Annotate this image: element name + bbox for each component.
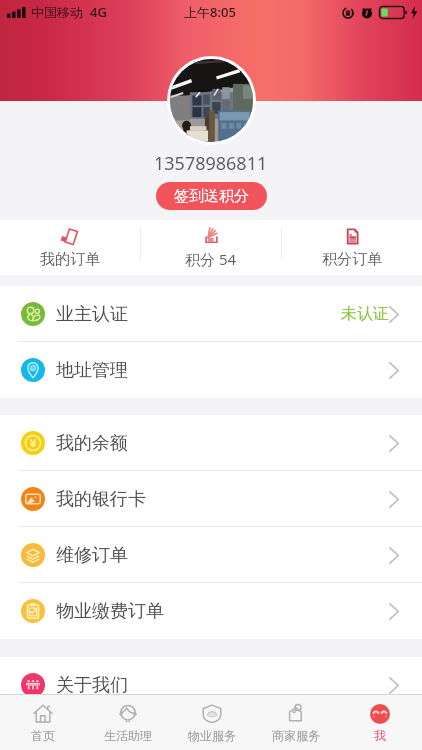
staticText: 我的银行卡 [56,488,146,511]
button[interactable]: 首页 [0,695,85,750]
staticText: 业主认证 [56,303,128,326]
button[interactable]: 物业服务 [170,695,254,750]
staticText: 关于我们 [56,674,128,697]
button[interactable]: 签到送积分 [156,182,267,210]
button[interactable]: 积分 54 [141,220,281,275]
staticText: 维修订单 [56,544,128,567]
staticText: 上午8:05 [184,3,236,21]
staticText: 13578986811 [154,151,268,176]
staticText: 积分 54 [185,249,237,269]
button[interactable]: 我的余额 [0,415,422,471]
staticText: 我 [374,728,386,743]
button[interactable]: 业主认证 [0,286,422,342]
button[interactable]: 地址管理 [0,342,422,398]
button[interactable]: 积分订单 [282,220,422,275]
button[interactable]: 维修订单 [0,527,422,583]
button[interactable]: Profile photo [170,59,253,142]
staticText: 商家服务 [272,728,320,743]
staticText: 中国移动 [31,4,83,20]
staticText: 积分订单 [322,250,382,269]
button[interactable]: 关于我们 [0,657,422,713]
staticText: 未认证 [341,304,389,324]
staticText: 签到送积分 [174,187,249,206]
staticText: 物业缴费订单 [56,600,164,623]
staticText: 首页 [31,728,55,743]
button[interactable]: 物业缴费订单 [0,583,422,639]
staticText: 地址管理 [56,359,128,382]
staticText: 4G [90,3,107,21]
button[interactable]: 我的订单 [0,220,140,275]
staticText: 物业服务 [188,728,236,743]
staticText: 我的余额 [56,432,128,455]
button[interactable]: 生活助理 [85,695,170,750]
button[interactable]: 我的银行卡 [0,471,422,527]
button[interactable]: 商家服务 [254,695,338,750]
staticText: 我的订单 [40,250,100,269]
staticText: 生活助理 [104,728,152,743]
button[interactable]: 我 [338,695,422,750]
